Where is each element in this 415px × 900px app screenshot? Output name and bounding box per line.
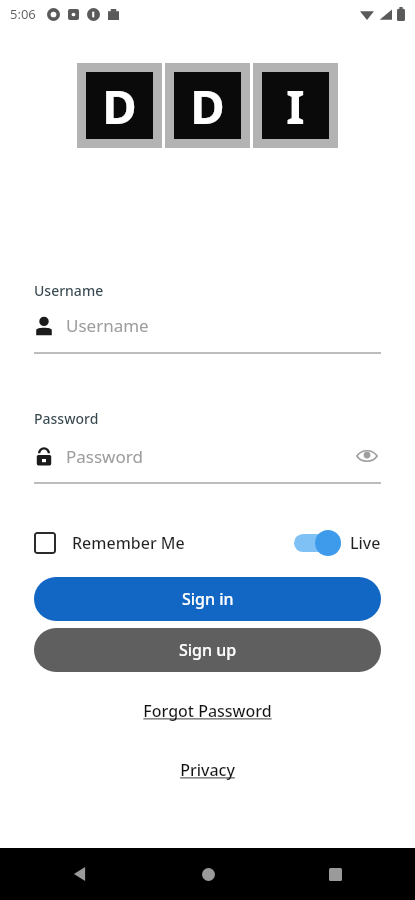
staticText: 5:06 [10, 5, 36, 23]
staticText: Password [66, 445, 143, 468]
button[interactable]: Remember Me [34, 532, 185, 554]
button[interactable]: Sign up [34, 628, 381, 672]
button[interactable]: Sign in [34, 577, 381, 621]
button[interactable]: Show password [353, 442, 381, 470]
button[interactable]: Password [34, 445, 353, 468]
button[interactable]: Forgot Password [137, 698, 278, 724]
staticText: Remember Me [72, 532, 185, 554]
staticText: Forgot Password [143, 700, 272, 722]
button[interactable]: Recent apps [313, 852, 357, 896]
button[interactable]: Username [34, 314, 381, 337]
button[interactable]: Privacy [174, 757, 241, 783]
staticText: Username [66, 314, 149, 337]
button[interactable]: Live toggle [294, 530, 381, 556]
staticText: Username [34, 281, 104, 300]
staticText: Sign up [179, 639, 237, 661]
button[interactable]: Home [186, 852, 230, 896]
staticText: Privacy [180, 759, 235, 781]
staticText: D [102, 74, 137, 138]
staticText: Live [350, 532, 381, 554]
staticText: Password [34, 409, 99, 428]
staticText: D [190, 74, 225, 138]
other: Live toggle [294, 530, 340, 556]
button[interactable]: Back [58, 852, 102, 896]
staticText: Sign in [182, 588, 234, 610]
staticText: I [286, 74, 305, 138]
